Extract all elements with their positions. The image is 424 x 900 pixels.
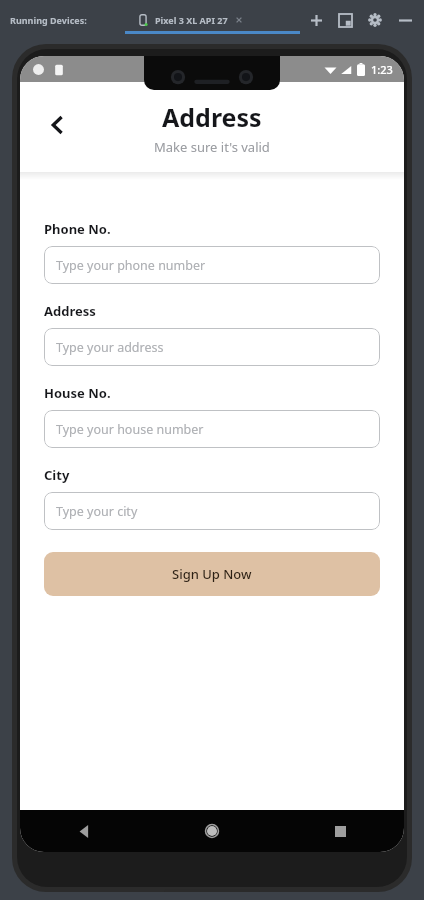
staticText: Type your house number: [56, 421, 204, 438]
staticText: City: [44, 466, 70, 484]
button[interactable]: Add device: [305, 9, 327, 31]
button[interactable]: Back: [62, 810, 106, 852]
staticText: 1:23: [371, 62, 393, 77]
button[interactable]: Type your address: [44, 328, 380, 366]
staticText: Type your phone number: [56, 257, 206, 274]
staticText: Address: [162, 100, 262, 134]
button[interactable]: Snapshot: [334, 9, 356, 31]
staticText: Type your address: [56, 339, 164, 356]
staticText: Pixel 3 XL API 27: [155, 14, 228, 26]
staticText: Address: [44, 302, 96, 320]
button[interactable]: Back: [36, 103, 80, 147]
staticText: Phone No.: [44, 220, 111, 238]
button[interactable]: Close tab: [234, 15, 244, 25]
button[interactable]: Minimize: [394, 9, 416, 31]
staticText: Type your city: [56, 503, 138, 520]
staticText: Make sure it's valid: [154, 138, 270, 156]
button[interactable]: Sign Up Now: [44, 552, 380, 596]
staticText: Running Devices:: [10, 14, 87, 26]
staticText: Sign Up Now: [172, 565, 252, 583]
staticText: House No.: [44, 384, 111, 402]
button[interactable]: Type your city: [44, 492, 380, 530]
button[interactable]: Type your phone number: [44, 246, 380, 284]
button[interactable]: Type your house number: [44, 410, 380, 448]
button[interactable]: Home: [190, 810, 234, 852]
button[interactable]: Settings: [364, 9, 386, 31]
button[interactable]: Recents: [318, 810, 362, 852]
